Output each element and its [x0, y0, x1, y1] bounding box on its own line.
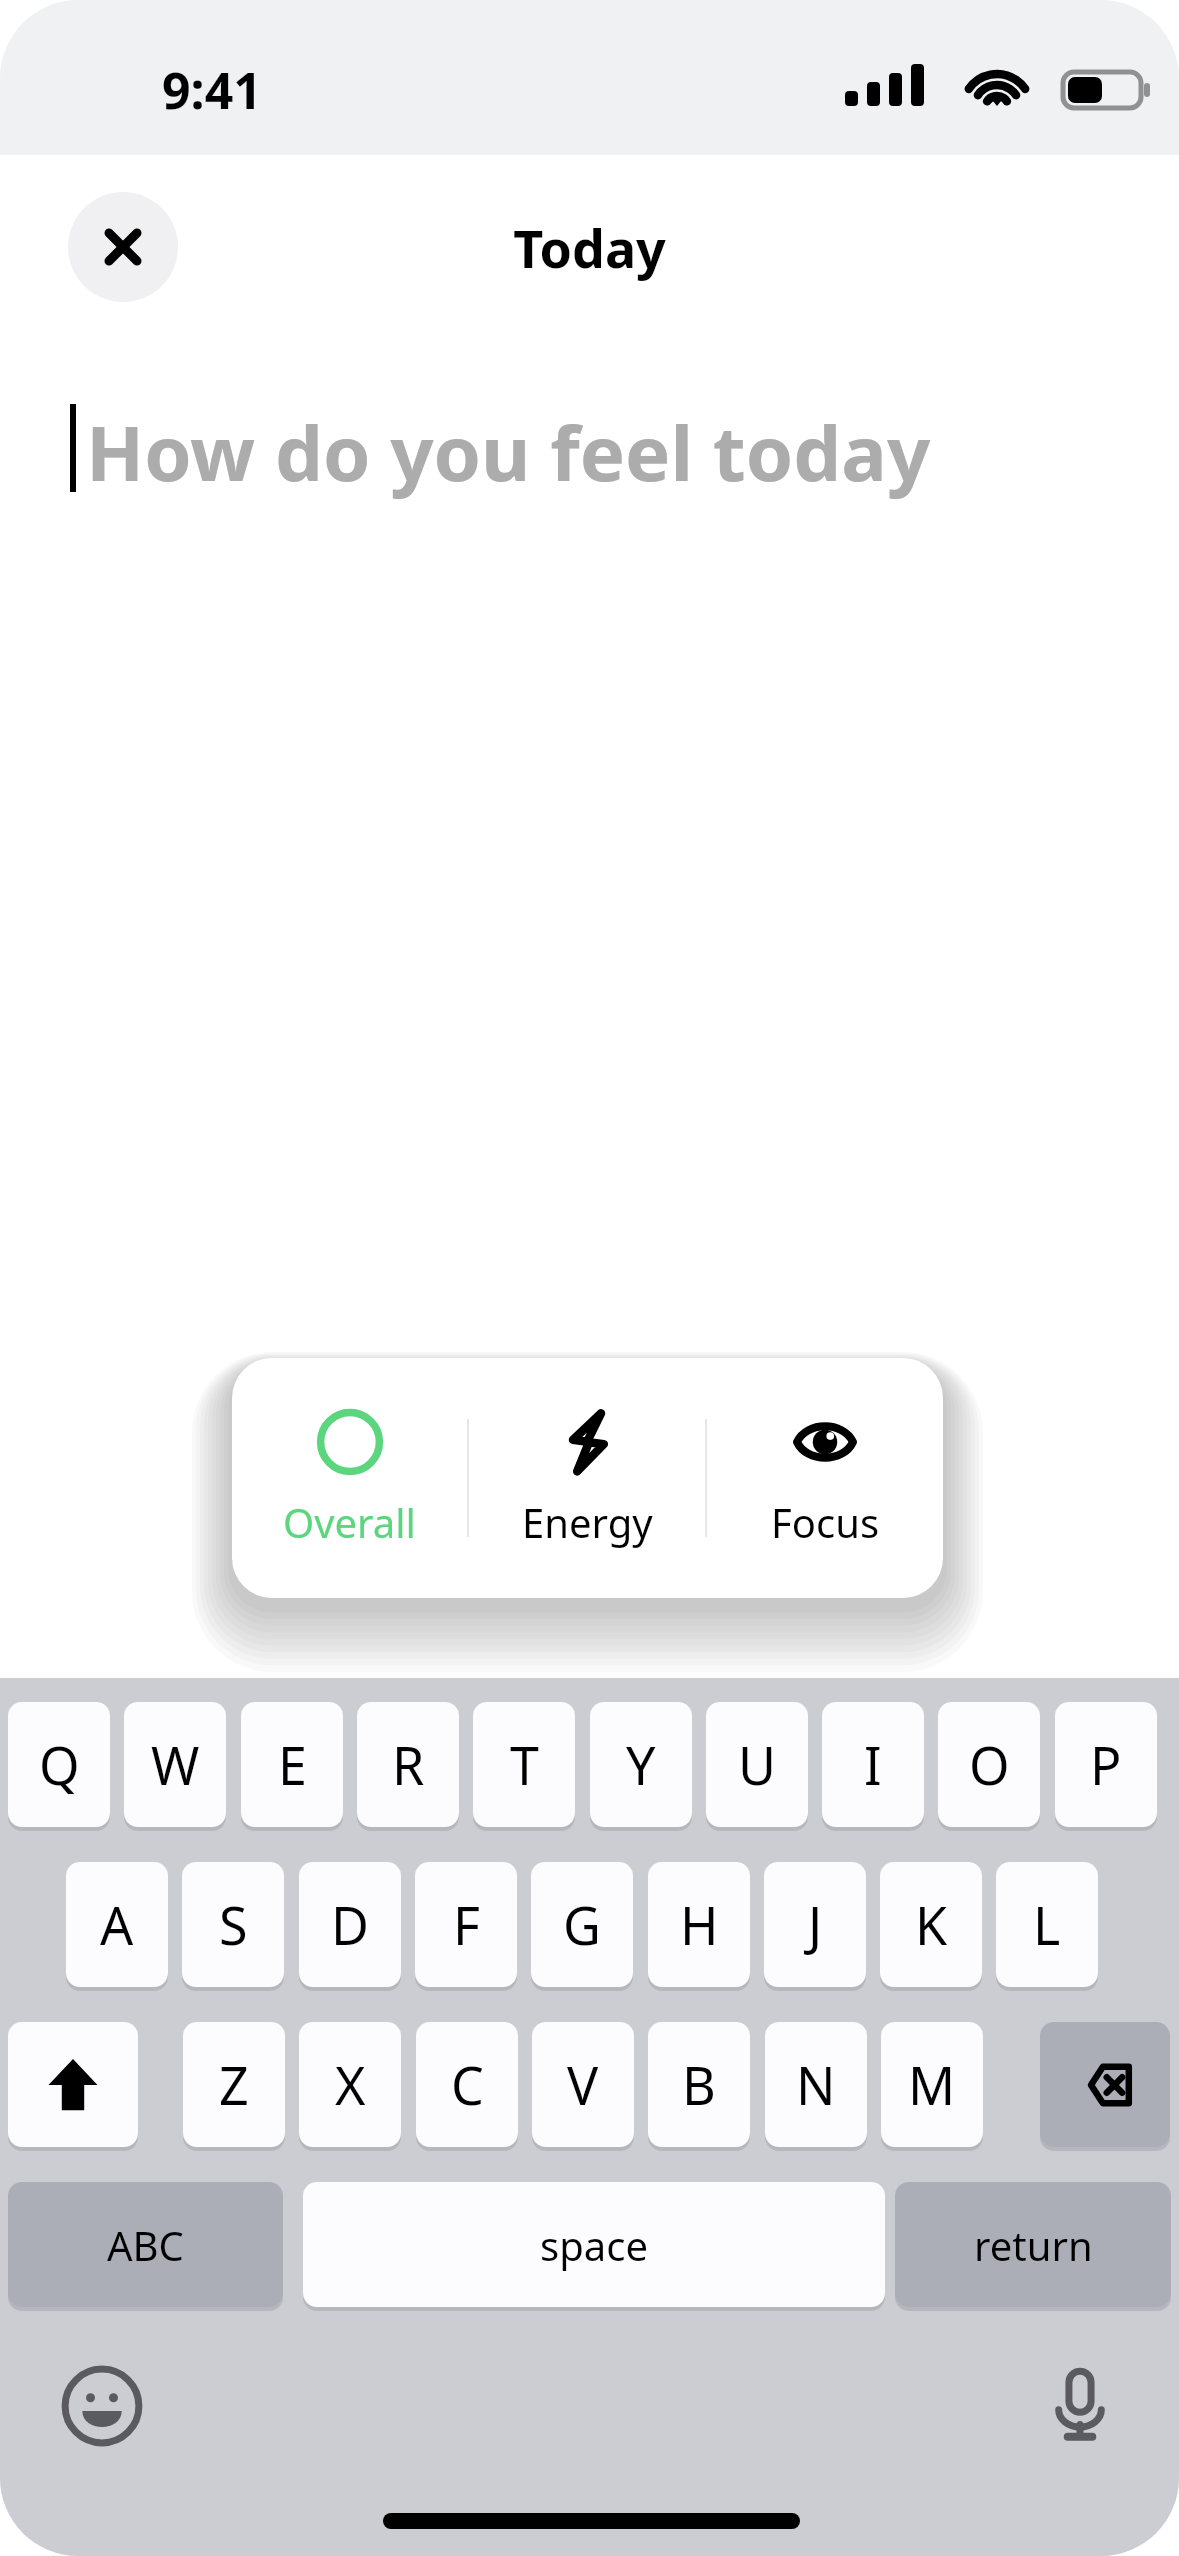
staticText: Q: [39, 1729, 80, 1800]
staticText: P: [1090, 1729, 1122, 1800]
staticText: N: [796, 2049, 836, 2120]
button[interactable]: V: [532, 2022, 634, 2147]
button[interactable]: H: [648, 1862, 750, 1987]
button[interactable]: Overall: [232, 1358, 467, 1598]
button[interactable]: O: [938, 1702, 1040, 1827]
staticText: W: [151, 1729, 200, 1800]
staticText: space: [540, 2218, 648, 2272]
button[interactable]: U: [706, 1702, 808, 1827]
staticText: ABC: [107, 2218, 184, 2272]
button[interactable]: Energy: [469, 1358, 705, 1598]
button[interactable]: Shift: [8, 2022, 138, 2147]
staticText: I: [864, 1729, 882, 1800]
button[interactable]: D: [299, 1862, 401, 1987]
staticText: L: [1033, 1889, 1061, 1960]
button[interactable]: Dictation: [1036, 2360, 1124, 2448]
staticText: D: [331, 1889, 369, 1960]
button[interactable]: Close: [68, 192, 178, 302]
button[interactable]: W: [124, 1702, 226, 1827]
button[interactable]: M: [881, 2022, 983, 2147]
button[interactable]: R: [357, 1702, 459, 1827]
button[interactable]: K: [880, 1862, 982, 1987]
button[interactable]: Backspace: [1040, 2022, 1170, 2147]
button[interactable]: N: [765, 2022, 867, 2147]
button[interactable]: L: [996, 1862, 1098, 1987]
button[interactable]: J: [764, 1862, 866, 1987]
button[interactable]: A: [66, 1862, 168, 1987]
button[interactable]: C: [416, 2022, 518, 2147]
button[interactable]: B: [648, 2022, 750, 2147]
staticText: H: [680, 1889, 719, 1960]
staticText: return: [974, 2218, 1093, 2272]
staticText: 9:41: [162, 56, 262, 124]
staticText: S: [219, 1889, 248, 1960]
staticText: K: [915, 1889, 948, 1960]
staticText: Z: [219, 2049, 249, 2120]
button[interactable]: T: [473, 1702, 575, 1827]
button[interactable]: ABC: [8, 2182, 283, 2307]
staticText: J: [808, 1889, 823, 1960]
staticText: T: [510, 1729, 539, 1800]
staticText: C: [451, 2049, 484, 2120]
button[interactable]: Focus: [707, 1358, 943, 1598]
staticText: R: [392, 1729, 425, 1800]
button[interactable]: Emoji keyboard: [58, 2362, 146, 2450]
button[interactable]: F: [415, 1862, 517, 1987]
button[interactable]: Q: [8, 1702, 110, 1827]
staticText: F: [453, 1889, 480, 1960]
staticText: Y: [626, 1729, 656, 1800]
button[interactable]: G: [531, 1862, 633, 1987]
staticText: How do you feel today: [86, 400, 931, 504]
button[interactable]: space: [303, 2182, 885, 2307]
staticText: M: [908, 2049, 956, 2120]
staticText: A: [100, 1889, 134, 1960]
staticText: O: [969, 1729, 1010, 1800]
button[interactable]: X: [299, 2022, 401, 2147]
staticText: E: [278, 1729, 307, 1800]
staticText: Energy: [522, 1495, 653, 1549]
button[interactable]: P: [1055, 1702, 1157, 1827]
staticText: Focus: [771, 1495, 880, 1549]
button[interactable]: I: [822, 1702, 924, 1827]
staticText: Overall: [283, 1495, 416, 1549]
button[interactable]: E: [241, 1702, 343, 1827]
button[interactable]: Z: [183, 2022, 285, 2147]
staticText: X: [335, 2049, 366, 2120]
staticText: Today: [0, 212, 1179, 283]
button[interactable]: return: [895, 2182, 1171, 2307]
staticText: V: [567, 2049, 599, 2120]
staticText: U: [738, 1729, 777, 1800]
staticText: G: [563, 1889, 601, 1960]
button[interactable]: S: [182, 1862, 284, 1987]
button[interactable]: Y: [590, 1702, 692, 1827]
staticText: B: [682, 2049, 716, 2120]
